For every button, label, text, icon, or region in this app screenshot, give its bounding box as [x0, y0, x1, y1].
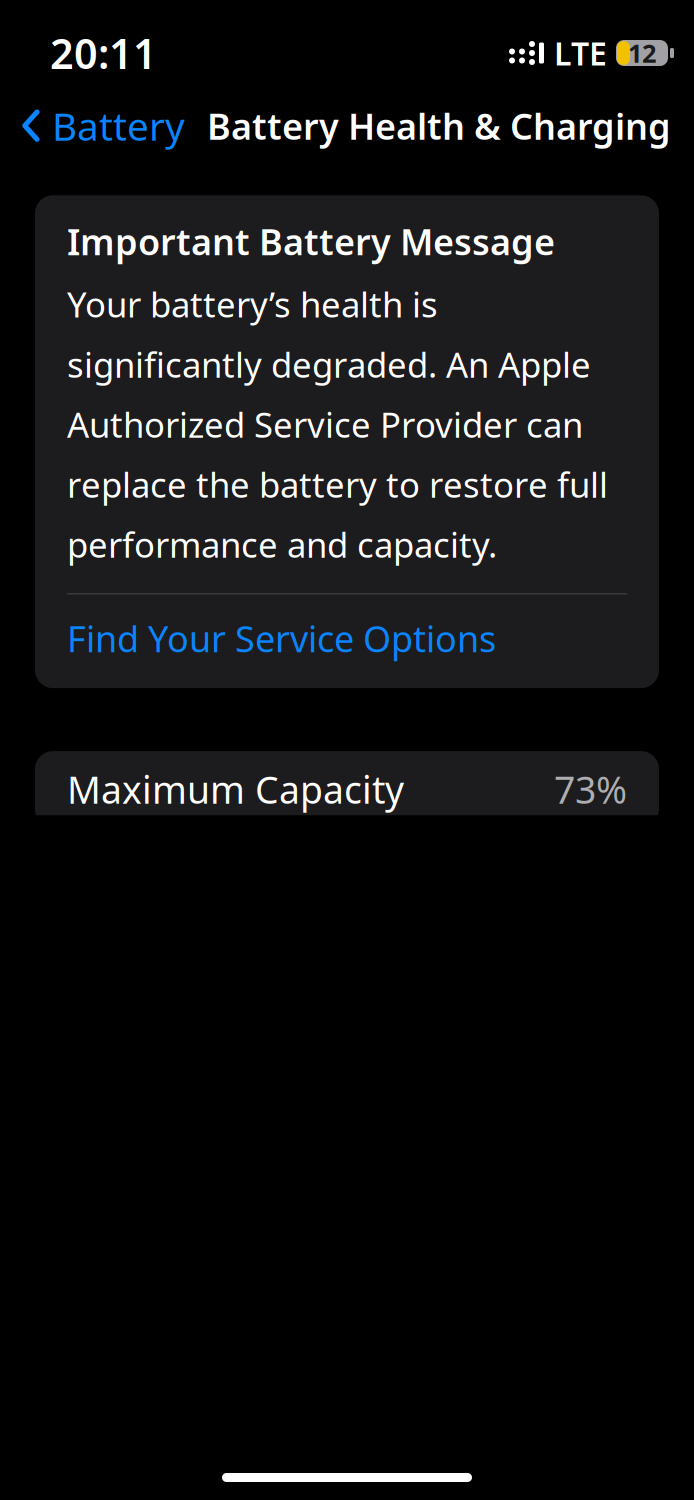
- button[interactable]: Maximum Capacity: [35, 751, 659, 827]
- button[interactable]: Battery: [0, 94, 185, 157]
- staticText: Find Your Service Options: [67, 614, 496, 662]
- staticText: Battery: [52, 100, 185, 151]
- staticText: Important Battery Message: [67, 217, 555, 265]
- button[interactable]: Find Your Service Options: [67, 594, 627, 682]
- staticText: Maximum Capacity: [67, 764, 404, 814]
- staticText: 73%: [554, 764, 627, 814]
- staticText: Built-in dynamic software and hardware s…: [67, 1255, 627, 1500]
- staticText: 20:11: [50, 26, 157, 80]
- staticText: Battery Health & Charging: [207, 102, 671, 150]
- staticText: LTE: [554, 32, 607, 74]
- staticText: 12: [628, 36, 656, 70]
- staticText: Your battery’s health is significantly d…: [67, 281, 608, 567]
